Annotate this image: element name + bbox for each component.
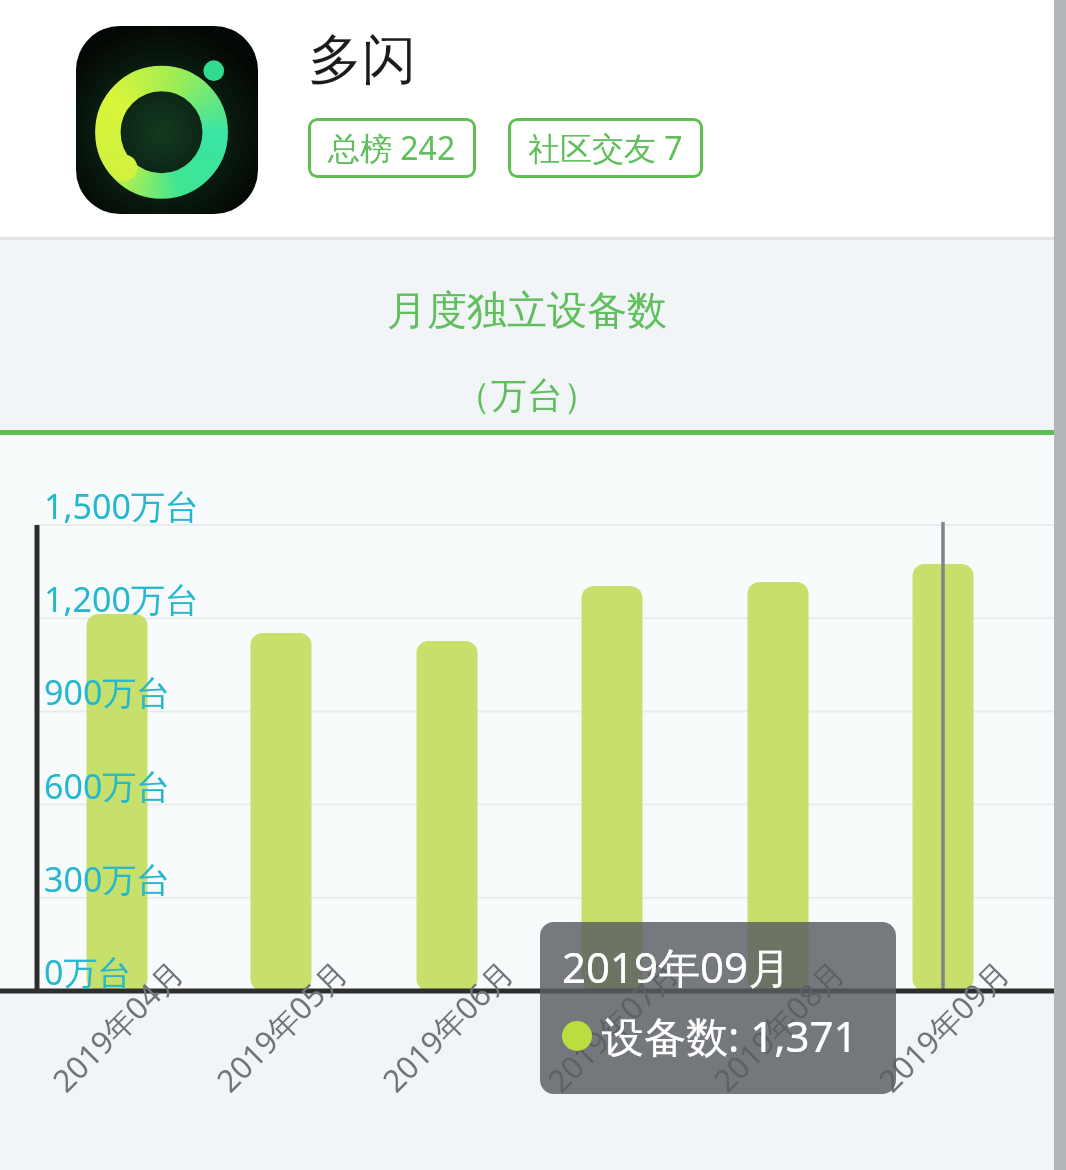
- staticText: 1,200万台: [44, 576, 199, 622]
- button[interactable]: 2019年09月: [540, 922, 896, 1094]
- button[interactable]: 多闪 app icon: [76, 26, 258, 214]
- staticText: 2019年04月: [43, 951, 192, 1101]
- staticText: 月度独立设备数: [0, 285, 1054, 335]
- staticText: 2019年09月: [562, 938, 791, 995]
- button[interactable]: 社区交友 7: [508, 118, 703, 178]
- staticText: 900万台: [44, 669, 171, 715]
- staticText: 多闪: [308, 26, 416, 94]
- staticText: 1,500万台: [44, 483, 199, 529]
- staticText: 2019年05月: [207, 951, 356, 1101]
- staticText: 600万台: [44, 763, 171, 809]
- staticText: （万台）: [0, 373, 1054, 418]
- staticText: 总榜 242: [328, 126, 456, 170]
- staticText: 社区交友 7: [528, 126, 683, 170]
- staticText: 0万台: [44, 949, 132, 995]
- button[interactable]: 总榜 242: [308, 118, 476, 178]
- staticText: 2019年07月: [538, 951, 687, 1101]
- staticText: 设备数: 1,371: [602, 1007, 858, 1064]
- staticText: 2019年09月: [869, 951, 1018, 1101]
- staticText: 300万台: [44, 856, 171, 902]
- staticText: 2019年08月: [704, 951, 853, 1101]
- staticText: 2019年06月: [373, 951, 522, 1101]
